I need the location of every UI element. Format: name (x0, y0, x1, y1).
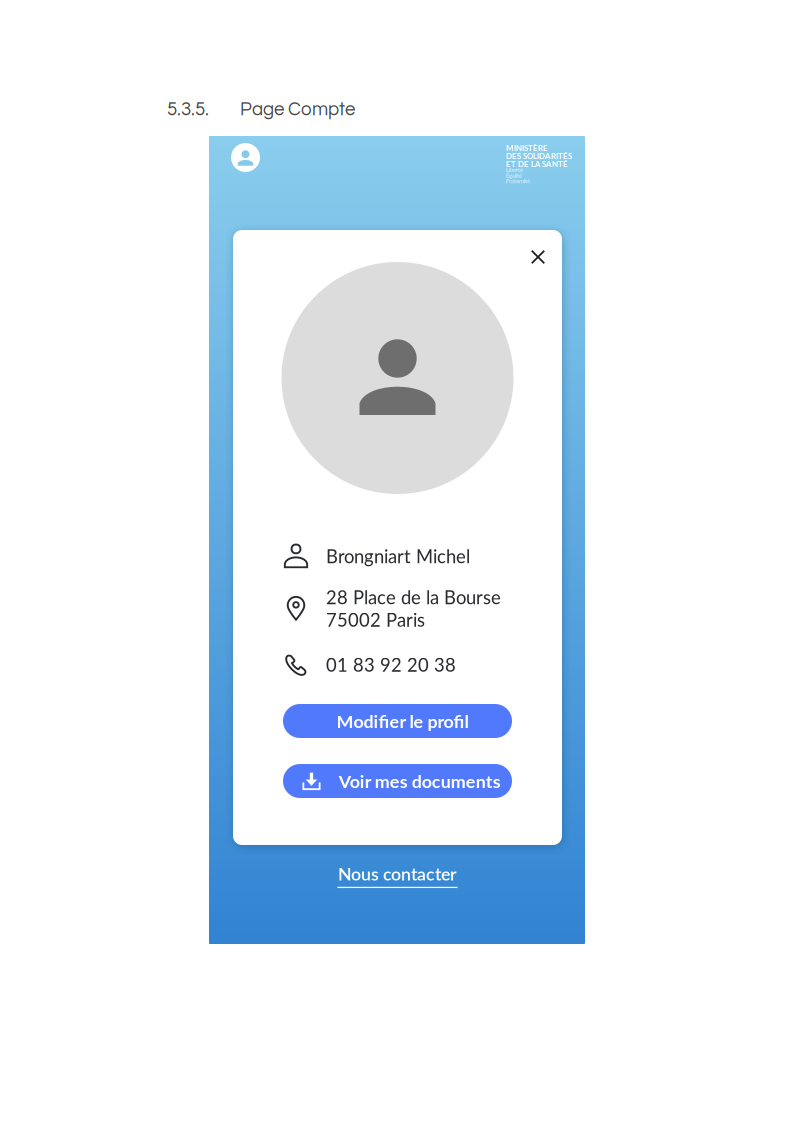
staticText: 28 Place de la Bourse (326, 586, 501, 608)
staticText: Page Compte (240, 100, 355, 119)
staticText: Brongniart Michel (326, 545, 470, 567)
button[interactable]: Fermer (524, 243, 552, 271)
button[interactable]: Modifier le profil (283, 704, 512, 738)
button[interactable]: Nous contacter (337, 863, 457, 888)
staticText: 01 83 92 20 38 (326, 654, 456, 676)
staticText: 75002 Paris (326, 609, 425, 631)
staticText: Fraternité (506, 177, 530, 184)
staticText: 5.3.5. (167, 100, 209, 119)
staticText: Voir mes documents (339, 770, 501, 792)
staticText: MINISTÈRE (506, 143, 548, 153)
staticText: DES SOLIDARITÉS (506, 151, 572, 161)
staticText: ET DE LA SANTÉ (506, 159, 568, 169)
button[interactable]: Mon compte (231, 143, 260, 172)
staticText: Nous contacter (338, 863, 457, 884)
button[interactable]: Voir mes documents (283, 764, 512, 798)
staticText: Liberté (506, 166, 523, 173)
staticText: Modifier le profil (336, 710, 468, 732)
staticText: Égalité (506, 172, 522, 179)
